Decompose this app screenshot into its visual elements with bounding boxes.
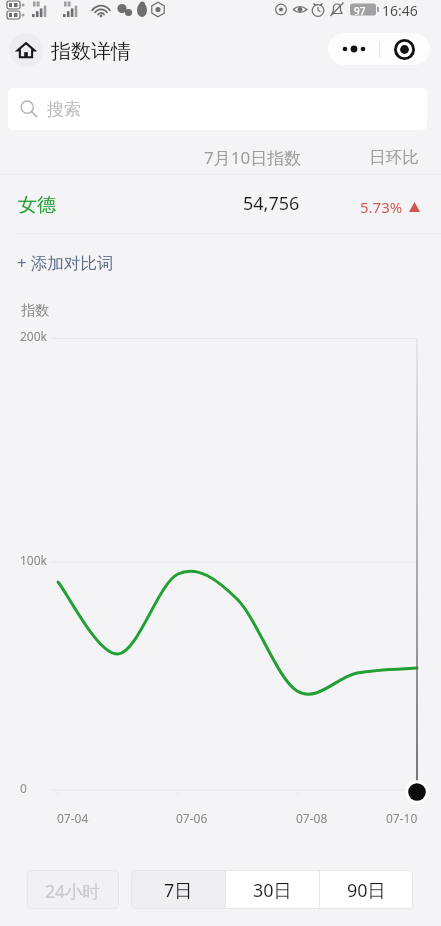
staticText: 搜索 — [47, 99, 81, 120]
staticText: 97 — [354, 4, 366, 18]
staticText: 100k — [20, 552, 48, 568]
staticText: 日环比 — [369, 147, 419, 168]
staticText: 16:46 — [382, 1, 418, 20]
button[interactable]: 7日 — [131, 870, 225, 909]
button[interactable]: 30日 — [226, 870, 319, 909]
staticText: 07-04 — [57, 810, 89, 826]
staticText: 07-10 — [386, 810, 418, 826]
staticText: 90日 — [347, 878, 386, 903]
button[interactable]: 24小时 — [27, 870, 119, 909]
staticText: 24小时 — [45, 879, 101, 903]
staticText: 指数详情 — [51, 39, 131, 64]
staticText: 07-06 — [176, 810, 208, 826]
button[interactable]: 搜索 — [8, 88, 427, 130]
staticText: 54,756 — [243, 191, 300, 216]
button[interactable]: Home — [9, 33, 43, 67]
button[interactable]: Close — [379, 33, 430, 65]
staticText: 07-08 — [296, 810, 328, 826]
staticText: 7月10日指数 — [204, 146, 302, 169]
button[interactable]: 90日 — [320, 870, 413, 909]
staticText: 200k — [20, 328, 48, 344]
staticText: 7日 — [164, 878, 193, 903]
staticText: 5.73% — [360, 197, 403, 217]
staticText: 30日 — [253, 878, 292, 903]
button[interactable]: More options — [328, 33, 379, 65]
staticText: 0 — [20, 780, 27, 796]
button[interactable]: 女德 — [0, 175, 441, 233]
button[interactable]: + 添加对比词 — [17, 251, 114, 274]
staticText: 指数 — [21, 302, 49, 320]
staticText: 女德 — [18, 193, 56, 217]
